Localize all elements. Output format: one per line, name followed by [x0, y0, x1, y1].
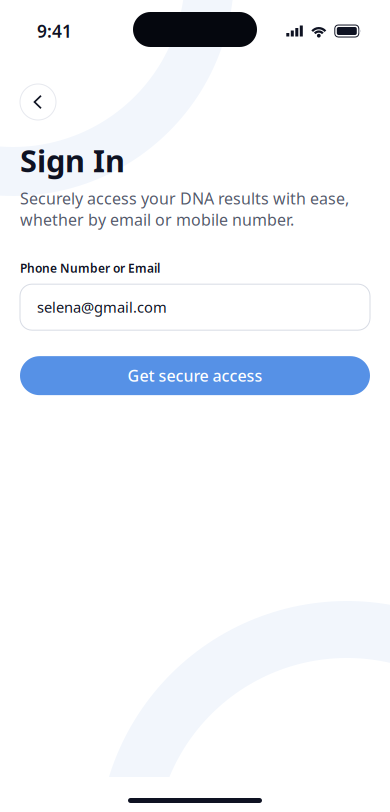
staticText: Sign In	[20, 140, 125, 181]
staticText: selena@gmail.com	[37, 297, 167, 317]
button[interactable]: Back	[20, 84, 56, 120]
staticText: Get secure access	[127, 365, 262, 386]
button[interactable]: Get secure access	[20, 356, 370, 395]
staticText: 9:41	[37, 19, 72, 42]
staticText: Phone Number or Email	[20, 260, 160, 276]
staticText: Securely access your DNA results with ea…	[20, 188, 349, 230]
